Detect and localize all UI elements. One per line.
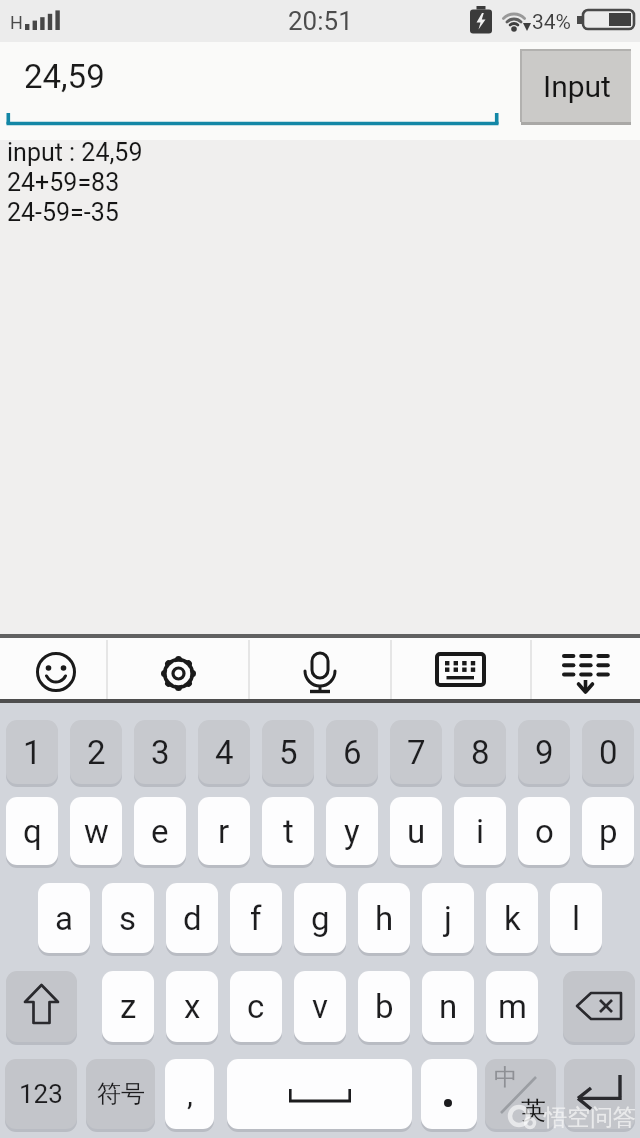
button[interactable]: 9 — [518, 720, 570, 784]
button[interactable]: 123 — [5, 1059, 77, 1129]
button[interactable]: d — [166, 883, 218, 953]
button[interactable] — [26, 643, 86, 699]
button[interactable]: b — [358, 971, 410, 1042]
staticText: b — [375, 987, 394, 1026]
staticText: c — [247, 987, 265, 1026]
button[interactable]: f — [230, 883, 282, 953]
staticText: k — [504, 899, 521, 938]
button[interactable]: r — [198, 797, 250, 865]
button[interactable]: 4 — [198, 720, 250, 784]
button[interactable]: h — [358, 883, 410, 953]
staticText: w — [84, 812, 109, 851]
button[interactable]: 0 — [582, 720, 634, 784]
staticText: 24+59=83 — [7, 168, 120, 197]
button[interactable] — [421, 1059, 477, 1129]
staticText: 24,59 — [24, 57, 105, 96]
button[interactable]: 3 — [134, 720, 186, 784]
button[interactable]: 7 — [390, 720, 442, 784]
button[interactable]: x — [166, 971, 218, 1042]
button[interactable]: i — [454, 797, 506, 865]
staticText: , — [187, 1077, 193, 1112]
button[interactable] — [296, 646, 344, 698]
staticText: a — [55, 899, 73, 938]
staticText: input : 24,59 — [7, 138, 143, 167]
button[interactable]: 6 — [326, 720, 378, 784]
button[interactable]: c — [230, 971, 282, 1042]
button[interactable] — [563, 971, 635, 1042]
button[interactable]: 符号 — [86, 1059, 155, 1129]
button[interactable]: 中 — [485, 1059, 556, 1129]
staticText: 123 — [19, 1079, 63, 1109]
staticText: s — [119, 899, 137, 938]
staticText: n — [439, 987, 458, 1026]
staticText: 5 — [279, 733, 298, 772]
staticText: 0 — [599, 733, 618, 772]
staticText: g — [311, 899, 330, 938]
button[interactable]: y — [326, 797, 378, 865]
staticText: u — [407, 812, 426, 851]
staticText: o — [535, 812, 554, 851]
button[interactable]: v — [294, 971, 346, 1042]
staticText: 1 — [23, 733, 42, 772]
button[interactable]: m — [486, 971, 538, 1042]
staticText: 6 — [343, 733, 362, 772]
staticText: t — [283, 812, 294, 851]
staticText: y — [344, 812, 360, 851]
button[interactable]: t — [262, 797, 314, 865]
staticText: 9 — [535, 733, 554, 772]
staticText: x — [184, 987, 201, 1026]
button[interactable]: 1 — [6, 720, 58, 784]
staticText: f — [250, 899, 262, 938]
staticText: 英 — [521, 1095, 546, 1126]
staticText: 8 — [471, 733, 490, 772]
button[interactable]: k — [486, 883, 538, 953]
button[interactable]: j — [422, 883, 474, 953]
staticText: v — [312, 987, 328, 1026]
button[interactable] — [6, 971, 77, 1042]
staticText: 4 — [215, 733, 234, 772]
staticText: 24-59=-35 — [7, 198, 119, 227]
button[interactable]: o — [518, 797, 570, 865]
staticText: H — [10, 12, 23, 33]
staticText: i — [476, 812, 485, 851]
button[interactable] — [435, 652, 487, 692]
button[interactable]: l — [550, 883, 602, 953]
staticText: 34% — [532, 10, 571, 35]
button[interactable]: e — [134, 797, 186, 865]
staticText: 悟空问答 — [544, 1103, 636, 1132]
button[interactable] — [559, 650, 613, 696]
button[interactable]: , — [165, 1059, 214, 1129]
staticText: p — [599, 812, 618, 851]
staticText: 7 — [407, 733, 426, 772]
button[interactable]: n — [422, 971, 474, 1042]
staticText: h — [375, 899, 394, 938]
button[interactable] — [150, 645, 207, 702]
staticText: 2 — [87, 733, 106, 772]
staticText: Input — [543, 69, 611, 104]
button[interactable]: Input — [520, 49, 631, 122]
staticText: j — [444, 899, 452, 938]
button[interactable]: u — [390, 797, 442, 865]
button[interactable]: 8 — [454, 720, 506, 784]
button[interactable]: q — [6, 797, 58, 865]
button[interactable]: z — [102, 971, 154, 1042]
button[interactable]: w — [70, 797, 122, 865]
staticText: 中 — [494, 1063, 517, 1092]
staticText: l — [572, 899, 581, 938]
button[interactable] — [227, 1059, 412, 1129]
staticText: 符号 — [97, 1079, 145, 1109]
button[interactable]: g — [294, 883, 346, 953]
staticText: m — [498, 987, 527, 1026]
staticText: 20:51 — [288, 6, 353, 36]
staticText: r — [218, 812, 230, 851]
button[interactable]: s — [102, 883, 154, 953]
button[interactable]: 5 — [262, 720, 314, 784]
button[interactable]: 2 — [70, 720, 122, 784]
staticText: q — [23, 812, 42, 851]
staticText: e — [151, 812, 169, 851]
staticText: z — [120, 987, 137, 1026]
button[interactable] — [564, 1059, 635, 1129]
button[interactable]: a — [38, 883, 90, 953]
staticText: 3 — [151, 733, 170, 772]
button[interactable]: p — [582, 797, 634, 865]
